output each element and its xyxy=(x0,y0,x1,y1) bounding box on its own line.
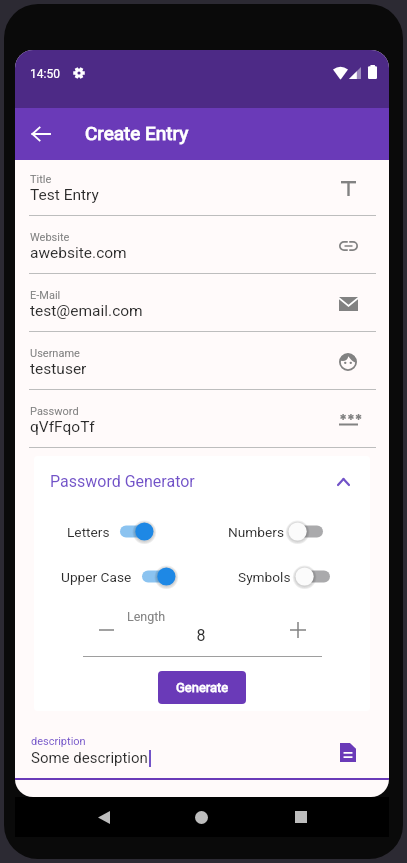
staticText: Test Entry xyxy=(30,186,99,204)
button[interactable]: Title xyxy=(15,160,389,218)
staticText: 8 xyxy=(34,626,369,645)
staticText: Numbers xyxy=(228,524,284,540)
staticText: description xyxy=(31,735,86,748)
button[interactable]: Upper Case xyxy=(61,567,175,586)
button[interactable]: Decrease length xyxy=(89,613,123,647)
button[interactable]: Username xyxy=(15,334,389,392)
staticText: Title xyxy=(30,173,52,186)
staticText: awebsite.com xyxy=(30,244,127,262)
button[interactable]: E-Mail xyxy=(15,276,389,334)
staticText: Letters xyxy=(67,524,110,540)
staticText: Password xyxy=(30,405,79,418)
staticText: Create Entry xyxy=(85,122,189,144)
staticText: testuser xyxy=(30,360,87,378)
staticText: 14:50 xyxy=(30,67,60,81)
staticText: Website xyxy=(30,231,70,244)
button[interactable]: Symbols xyxy=(238,567,334,586)
staticText: Password Generator xyxy=(50,472,195,491)
button[interactable]: Password Generator xyxy=(34,456,370,500)
button[interactable]: Letters xyxy=(67,522,153,541)
staticText: Symbols xyxy=(238,569,291,585)
button[interactable]: Back xyxy=(25,118,57,150)
staticText: qVfFqoTf xyxy=(30,418,95,436)
staticText: Some description xyxy=(31,749,148,767)
button[interactable]: Website xyxy=(15,218,389,276)
staticText: test@email.com xyxy=(30,302,143,320)
button[interactable]: Numbers xyxy=(228,522,327,541)
staticText: Username xyxy=(30,347,80,360)
button[interactable]: description xyxy=(15,711,389,797)
staticText: Length xyxy=(127,609,166,624)
button[interactable]: Increase length xyxy=(281,613,315,647)
staticText: Upper Case xyxy=(61,569,132,585)
button[interactable]: Generate xyxy=(158,671,246,704)
staticText: E-Mail xyxy=(30,289,61,302)
button[interactable]: Password xyxy=(15,392,389,450)
staticText: Generate xyxy=(176,680,229,695)
